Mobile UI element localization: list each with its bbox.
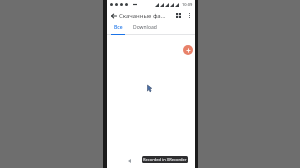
button[interactable]: More options bbox=[184, 10, 195, 21]
button[interactable]: Все bbox=[111, 22, 125, 33]
button[interactable]: Change view bbox=[173, 10, 184, 21]
staticText: Скачанные фа… bbox=[119, 12, 166, 20]
button[interactable]: Back bbox=[108, 10, 119, 21]
staticText: Все bbox=[114, 24, 123, 31]
staticText: Recorded in XRecorder bbox=[143, 157, 187, 162]
button[interactable]: Back bbox=[125, 157, 133, 165]
staticText: 10:09 bbox=[182, 2, 193, 7]
button[interactable]: Create bbox=[183, 45, 193, 55]
staticText: Download bbox=[133, 24, 157, 31]
button[interactable]: Download bbox=[131, 22, 159, 33]
